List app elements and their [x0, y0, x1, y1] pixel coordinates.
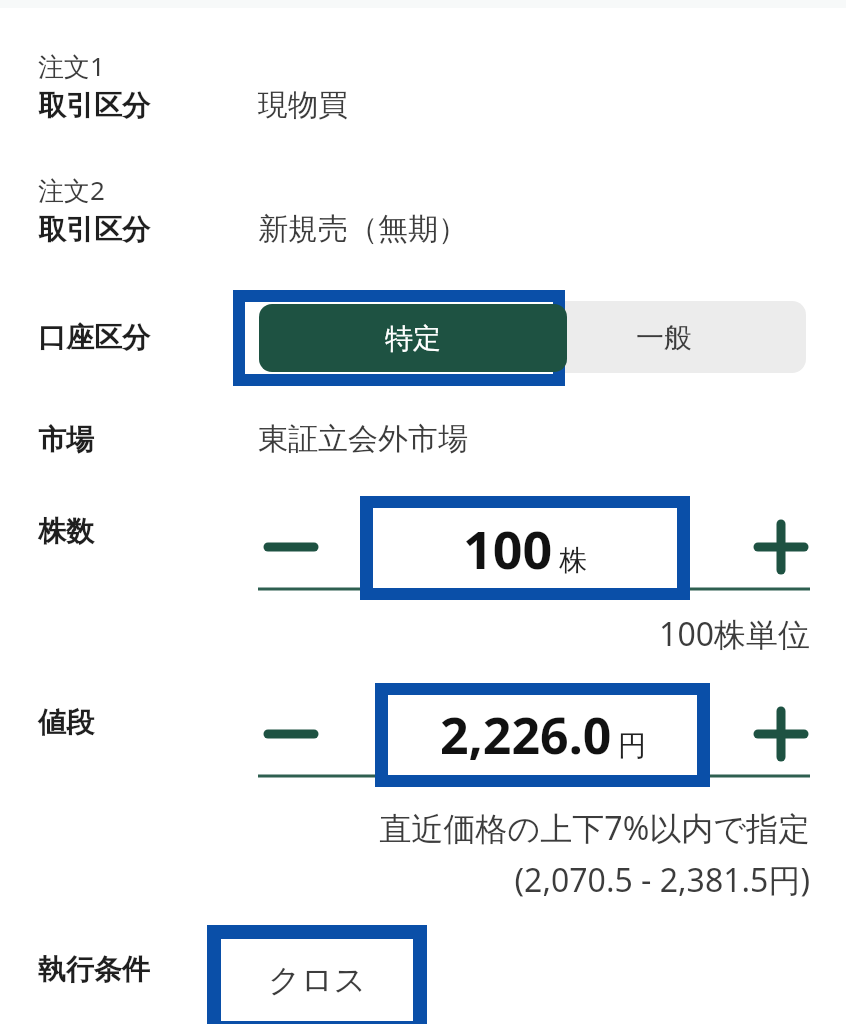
button[interactable]: クロス [221, 939, 413, 1021]
staticText: 2,226.0 [440, 701, 612, 769]
staticText: 株 [559, 543, 587, 578]
staticText: 100株単位 [0, 612, 810, 656]
button[interactable] [237, 301, 521, 373]
staticText: 一般 [636, 320, 692, 355]
staticText: 取引区分 [38, 88, 150, 123]
button[interactable]: 2,226.0 [388, 695, 697, 775]
staticText: 口座区分 [38, 320, 150, 355]
staticText: 注文2 [38, 172, 105, 208]
staticText: 現物買 [258, 86, 348, 124]
staticText: (2,070.5 - 2,381.5円) [0, 858, 810, 902]
button[interactable]: 100 [373, 508, 677, 588]
button[interactable]: 一般 [521, 301, 806, 373]
staticText: 注文1 [38, 48, 105, 84]
staticText: クロス [268, 960, 367, 1000]
button[interactable]: Decrease Price [262, 705, 320, 763]
staticText: 株数 [38, 514, 94, 549]
staticText: 100 [463, 513, 553, 584]
button[interactable]: Increase Price [752, 705, 810, 763]
staticText: 値段 [38, 705, 94, 740]
staticText: 執行条件 [38, 952, 150, 987]
staticText: 円 [618, 728, 646, 763]
button[interactable]: Increase Quantity [752, 518, 810, 576]
staticText: 特定 [385, 321, 441, 356]
staticText: 新規売（無期） [258, 210, 468, 248]
staticText: 取引区分 [38, 212, 150, 247]
button[interactable]: Decrease Quantity [262, 518, 320, 576]
staticText: 東証立会外市場 [258, 420, 468, 458]
staticText: 市場 [38, 422, 94, 457]
button[interactable]: 特定 [259, 304, 567, 372]
staticText: 直近価格の上下7%以内で指定 [0, 806, 810, 850]
